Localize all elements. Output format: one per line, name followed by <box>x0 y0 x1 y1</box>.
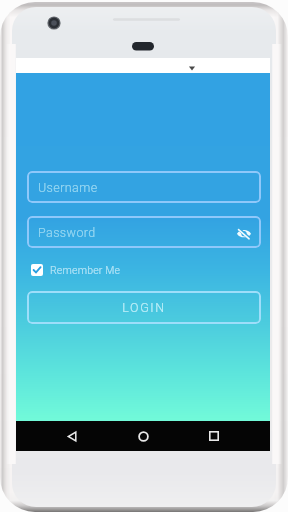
button[interactable]: Username <box>27 171 261 203</box>
staticText: Password <box>38 225 96 240</box>
button[interactable]: Recent apps <box>199 421 229 451</box>
button[interactable]: LOGIN <box>27 291 261 324</box>
button[interactable]: Show password <box>236 225 252 241</box>
button[interactable]: Remember Me <box>31 263 121 277</box>
button[interactable]: Home <box>128 421 158 451</box>
button[interactable]: Back <box>57 421 87 451</box>
staticText: Username <box>38 180 98 195</box>
button[interactable]: Password <box>27 216 261 248</box>
staticText: Remember Me <box>50 264 121 276</box>
staticText: LOGIN <box>122 300 166 315</box>
